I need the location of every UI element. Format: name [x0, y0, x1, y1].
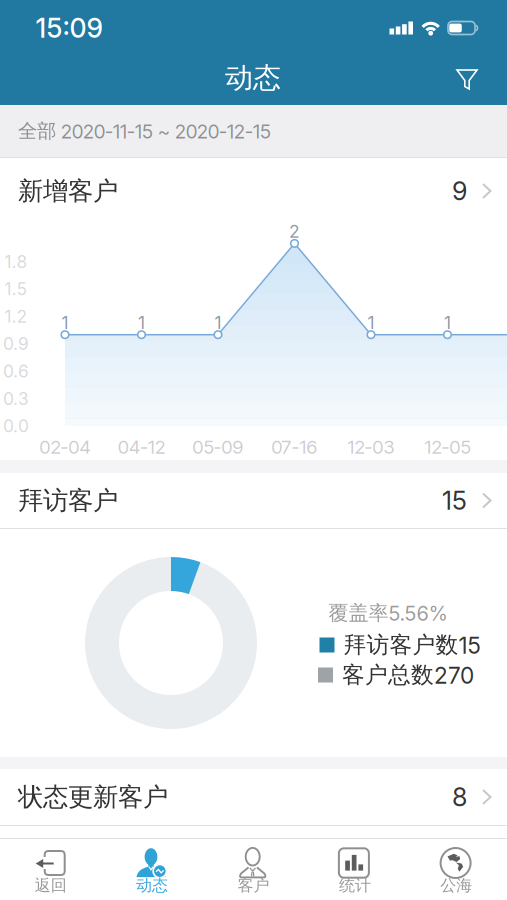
button[interactable]: 拜访客户 [0, 473, 507, 528]
staticText: 动态 [225, 61, 281, 95]
staticText: 覆盖率5.56% [328, 601, 447, 625]
staticText: 1.5 [4, 279, 27, 299]
button[interactable]: 筛选 [445, 57, 489, 101]
staticText: 12-03 [347, 436, 394, 458]
button[interactable]: 动态 [101, 839, 203, 900]
button[interactable]: 状态更新客户 [0, 769, 507, 825]
staticText: 1 [367, 312, 374, 333]
staticText: 0.3 [3, 388, 29, 409]
staticText: 1 [61, 312, 68, 333]
staticText: 0.9 [3, 334, 29, 354]
button[interactable]: 公海 [406, 839, 507, 900]
staticText: 2 [289, 221, 300, 242]
staticText: 1 [214, 312, 221, 333]
staticText: 1.8 [4, 251, 27, 272]
staticText: 1 [138, 312, 145, 333]
staticText: 07-16 [271, 436, 317, 458]
staticText: 04-12 [118, 436, 165, 458]
staticText: 客户 [237, 876, 269, 895]
staticText: 动态 [136, 876, 168, 895]
staticText: 新增客户 [18, 175, 118, 206]
button[interactable]: 全部 2020-11-15 ~ 2020-12-15 [0, 105, 507, 157]
button[interactable]: 新增客户 [0, 158, 507, 224]
staticText: 状态更新客户 [18, 781, 168, 812]
staticText: 公海 [440, 876, 472, 895]
staticText: 1.2 [4, 306, 27, 327]
staticText: 拜访客户数15 [343, 631, 480, 659]
staticText: 12-05 [424, 436, 470, 458]
staticText: 0.0 [3, 416, 29, 436]
staticText: 客户总数270 [342, 661, 474, 689]
button[interactable]: 客户 [203, 839, 304, 900]
staticText: 9 [452, 176, 467, 206]
staticText: 05-09 [192, 436, 243, 458]
staticText: 02-04 [39, 436, 90, 458]
button[interactable]: 返回 [0, 839, 101, 900]
staticText: 拜访客户 [18, 485, 118, 516]
staticText: 返回 [35, 876, 67, 895]
staticText: 1 [444, 312, 451, 333]
staticText: 0.6 [3, 361, 29, 381]
button[interactable]: 统计 [304, 839, 406, 900]
staticText: 全部 2020-11-15 ~ 2020-12-15 [18, 119, 271, 143]
staticText: 统计 [339, 876, 371, 895]
staticText: 15:09 [35, 12, 102, 44]
staticText: 8 [452, 782, 467, 812]
staticText: 15 [442, 486, 467, 515]
